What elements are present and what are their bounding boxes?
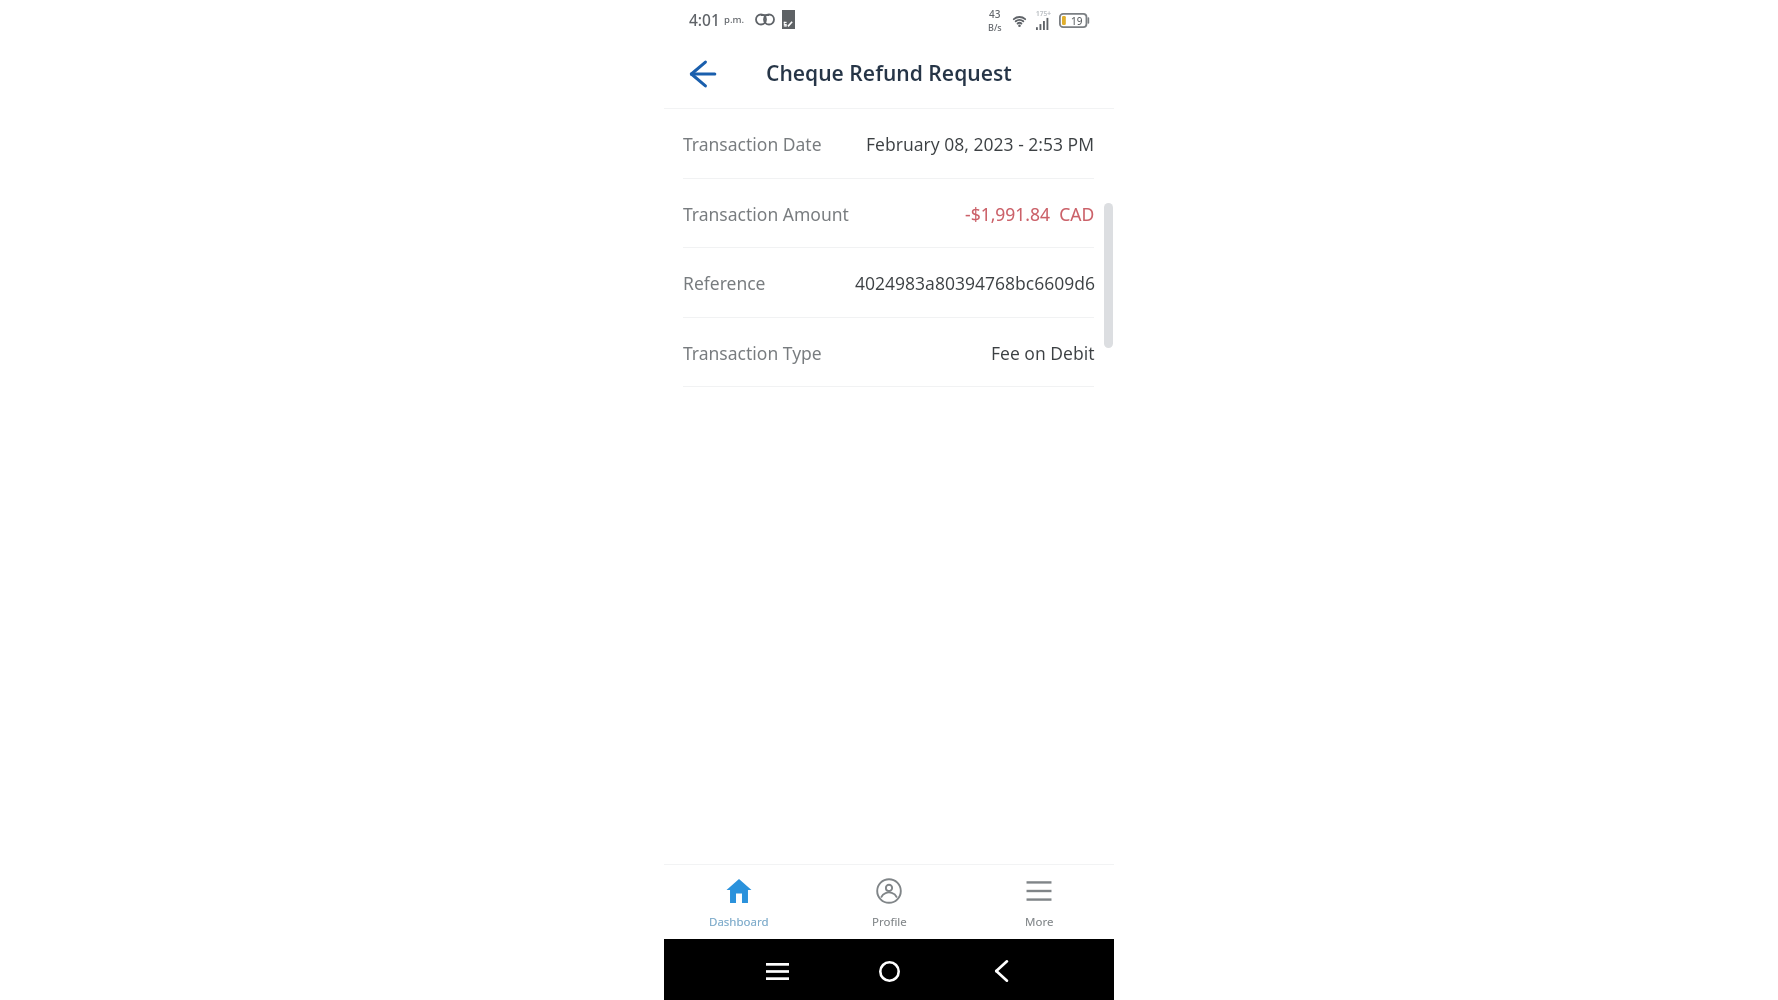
button[interactable]: Transaction Type	[664, 318, 1114, 387]
staticText: -$1,991.84 CAD	[965, 202, 1095, 226]
staticText: 4024983a80394768bc6609d6	[855, 271, 1095, 295]
button[interactable]: Home	[861, 947, 917, 995]
staticText: Fee on Debit	[991, 341, 1095, 365]
staticText: 175+	[1036, 9, 1051, 18]
button[interactable]: Back	[680, 51, 726, 97]
staticText: 4:01	[689, 9, 720, 30]
staticText: February 08, 2023 - 2:53 PM	[866, 132, 1095, 156]
button[interactable]: Profile	[814, 865, 964, 939]
button[interactable]: More	[964, 865, 1114, 939]
staticText: Transaction Type	[683, 341, 822, 365]
button[interactable]: Transaction Amount	[664, 179, 1114, 248]
staticText: Reference	[683, 271, 766, 295]
staticText: 19	[1071, 14, 1083, 28]
staticText: p.m.	[724, 13, 745, 26]
button[interactable]: Transaction Date	[664, 109, 1114, 179]
staticText: Cheque Refund Request	[766, 59, 1012, 88]
staticText: Profile	[872, 914, 907, 930]
staticText: More	[1025, 914, 1054, 930]
button[interactable]: Reference	[664, 248, 1114, 318]
staticText: Dashboard	[709, 914, 769, 930]
staticText: 43	[989, 7, 1001, 21]
button[interactable]: Back	[973, 947, 1029, 995]
staticText: Transaction Amount	[683, 202, 849, 226]
button[interactable]: Dashboard	[664, 865, 814, 939]
button[interactable]: Recent apps	[749, 947, 805, 995]
staticText: B/s	[988, 21, 1002, 33]
staticText: Transaction Date	[683, 132, 822, 156]
